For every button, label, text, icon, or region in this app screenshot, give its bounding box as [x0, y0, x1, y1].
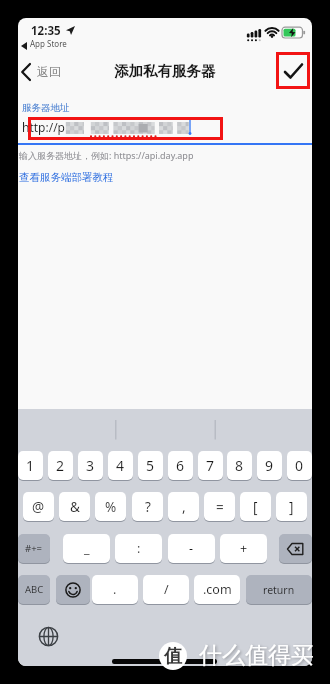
staticText: 返回 — [37, 64, 61, 79]
button[interactable]: 1 — [18, 451, 43, 480]
staticText: http://p — [22, 119, 65, 135]
button[interactable]: App Store — [30, 38, 67, 49]
button[interactable] — [279, 534, 312, 563]
staticText: @ — [32, 498, 45, 516]
button[interactable]: ABC — [18, 575, 50, 604]
button[interactable]: % — [95, 492, 126, 521]
staticText: 2 — [56, 456, 65, 475]
staticText: & — [70, 498, 80, 516]
button[interactable]: / — [143, 575, 189, 604]
button[interactable]: 8 — [227, 451, 252, 480]
button[interactable]: , — [168, 492, 199, 521]
button[interactable]: .com — [194, 575, 240, 604]
staticText: 9 — [265, 456, 274, 475]
staticText: .com — [203, 581, 232, 598]
staticText: 1 — [26, 456, 35, 475]
staticText: 7 — [206, 456, 215, 475]
button[interactable]: return — [246, 575, 312, 604]
button[interactable]: . — [92, 575, 138, 604]
button[interactable]: 7 — [198, 451, 223, 480]
staticText: 添加私有服务器 — [114, 62, 216, 80]
button[interactable]: + — [220, 534, 267, 563]
staticText: _ — [84, 540, 90, 557]
staticText: + — [240, 540, 248, 557]
button[interactable]: = — [204, 492, 235, 521]
staticText: 12:35 — [31, 23, 61, 39]
button[interactable]: [ — [240, 492, 271, 521]
button[interactable]: : — [115, 534, 162, 563]
button[interactable] — [39, 627, 58, 646]
button[interactable] — [19, 60, 71, 84]
staticText: ] — [289, 498, 294, 516]
staticText: 服务器地址 — [22, 102, 70, 114]
staticText: % — [105, 498, 117, 516]
staticText: 输入服务器地址，例如: https://api.day.app — [19, 149, 194, 161]
button[interactable]: - — [168, 534, 215, 563]
staticText: / — [164, 581, 169, 598]
button[interactable]: ] — [276, 492, 307, 521]
staticText: ABC — [25, 583, 44, 596]
button[interactable]: _ — [63, 534, 110, 563]
staticText: 8 — [235, 456, 244, 475]
button[interactable]: 4 — [108, 451, 133, 480]
staticText: ? — [145, 498, 151, 516]
staticText: = — [216, 498, 224, 516]
button[interactable]: 查看服务端部署教程 — [19, 171, 114, 184]
button[interactable]: 2 — [48, 451, 73, 480]
button[interactable]: @ — [23, 492, 54, 521]
staticText: , — [182, 498, 186, 516]
staticText: 值 — [164, 645, 182, 668]
staticText: 0 — [295, 456, 304, 475]
button[interactable]: 6 — [168, 451, 193, 480]
staticText: - — [189, 540, 194, 557]
staticText: 5 — [146, 456, 155, 475]
button[interactable]: 5 — [138, 451, 163, 480]
button[interactable]: 3 — [78, 451, 103, 480]
staticText: 什么值得买 — [199, 641, 314, 670]
staticText: : — [137, 540, 141, 557]
button[interactable] — [56, 575, 90, 604]
staticText: 4 — [116, 456, 125, 475]
staticText: [ — [253, 498, 258, 516]
button[interactable]: & — [59, 492, 90, 521]
button[interactable] — [276, 52, 310, 89]
staticText: #+= — [25, 542, 43, 555]
staticText: 6 — [176, 456, 185, 475]
staticText: . — [113, 581, 117, 598]
staticText: return — [263, 583, 295, 597]
button[interactable]: 0 — [287, 451, 312, 480]
staticText: 3 — [86, 456, 95, 475]
button[interactable]: ? — [132, 492, 163, 521]
button[interactable]: #+= — [18, 534, 50, 563]
button[interactable]: 9 — [257, 451, 282, 480]
